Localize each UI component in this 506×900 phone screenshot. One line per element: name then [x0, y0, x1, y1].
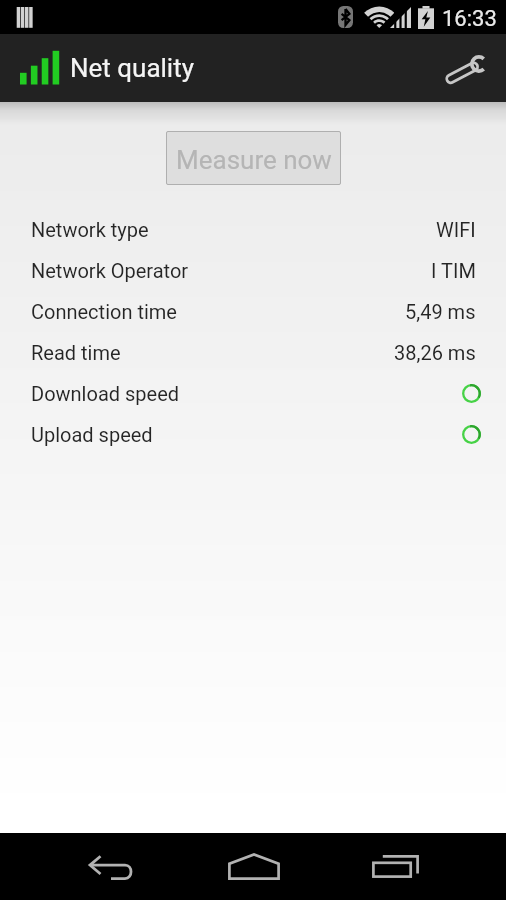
button[interactable]: Back	[42, 833, 183, 900]
staticText: Read time	[31, 341, 121, 364]
staticText: 16:33	[442, 6, 497, 32]
staticText: I TIM	[431, 259, 476, 282]
button[interactable]: Measure now	[166, 131, 341, 185]
staticText: 5,49 ms	[405, 300, 476, 323]
staticText: Connection time	[31, 300, 177, 323]
staticText: Download speed	[31, 382, 180, 405]
staticText: Upload speed	[31, 423, 153, 446]
staticText: WIFI	[436, 218, 476, 241]
staticText: Measure now	[176, 145, 332, 175]
button[interactable]: Home	[183, 833, 324, 900]
button[interactable]: Recent apps	[324, 833, 465, 900]
button[interactable]: Network Operator	[0, 250, 506, 291]
button[interactable]: Connection time	[0, 291, 506, 332]
button[interactable]: Read time	[0, 332, 506, 373]
staticText: Net quality	[70, 53, 194, 83]
button[interactable]: Download speed	[0, 373, 506, 414]
button[interactable]: Network type	[0, 209, 506, 250]
button[interactable]: Settings	[440, 34, 506, 102]
staticText: Network Operator	[31, 259, 189, 282]
staticText: 38,26 ms	[394, 341, 476, 364]
staticText: Network type	[31, 218, 149, 241]
button[interactable]: Upload speed	[0, 414, 506, 455]
